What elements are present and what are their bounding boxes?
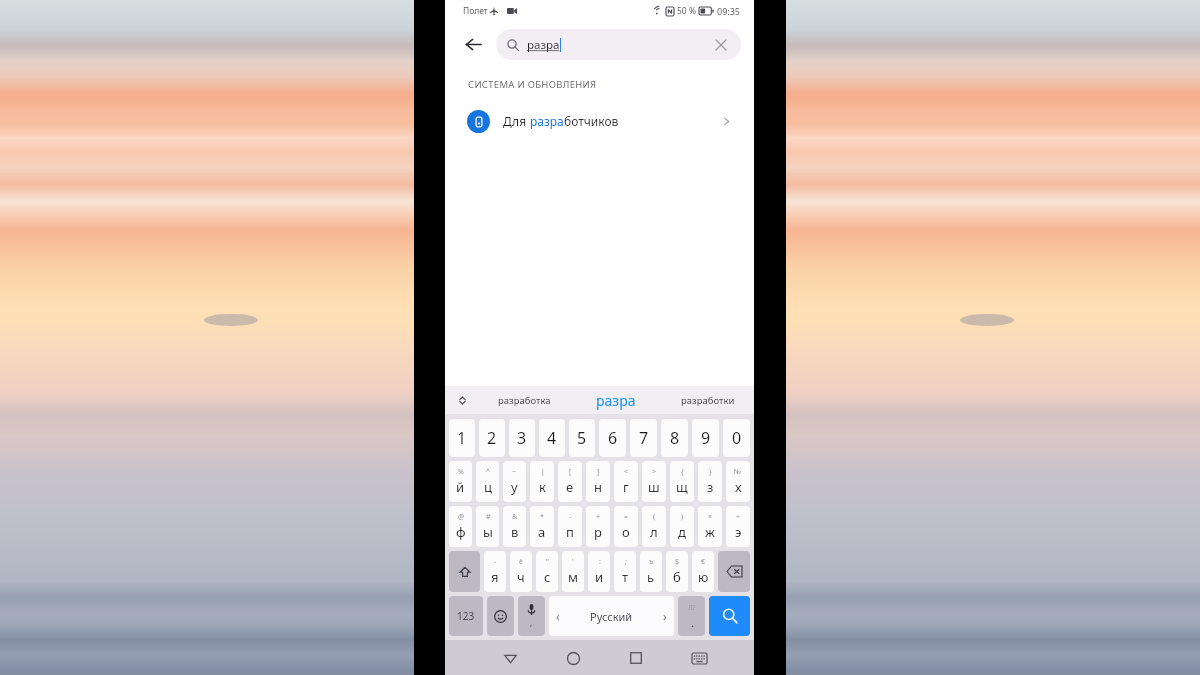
staticText: д: [678, 523, 686, 541]
button[interactable]: Домой: [558, 643, 588, 673]
staticText: ч: [517, 568, 525, 586]
button[interactable]: 7: [630, 419, 657, 457]
staticText: у: [511, 478, 518, 496]
button[interactable]: 123: [449, 596, 483, 636]
staticText: н: [594, 478, 602, 496]
button[interactable]: ~: [503, 461, 526, 502]
button[interactable]: {: [670, 461, 694, 502]
staticText: +: [596, 512, 601, 522]
button[interactable]: *: [530, 506, 554, 547]
staticText: б: [673, 568, 681, 586]
staticText: {: [681, 467, 684, 477]
staticText: $: [675, 557, 680, 567]
button[interactable]: 4: [539, 419, 565, 457]
staticText: *: [540, 512, 544, 522]
button[interactable]: -: [558, 506, 582, 547]
button[interactable]: Недавние: [621, 643, 651, 673]
button[interactable]: №: [726, 461, 750, 502]
button[interactable]: 6: [599, 419, 626, 457]
button[interactable]: Очистить: [712, 36, 730, 54]
button[interactable]: =: [614, 506, 638, 547]
button[interactable]: ": [536, 551, 558, 592]
button[interactable]: |: [530, 461, 554, 502]
staticText: ‹: [556, 608, 560, 624]
staticText: €: [701, 557, 706, 567]
staticText: р: [594, 523, 602, 541]
button[interactable]: (: [642, 506, 666, 547]
button[interactable]: ×: [698, 506, 722, 547]
button[interactable]: &: [503, 506, 526, 547]
button[interactable]: <: [614, 461, 638, 502]
button[interactable]: Развернуть подсказки: [445, 386, 479, 414]
button[interactable]: Скрыть клавиатуру: [684, 643, 714, 673]
button[interactable]: $: [666, 551, 688, 592]
button[interactable]: ^: [476, 461, 499, 502]
button[interactable]: 8: [661, 419, 688, 457]
button[interactable]: Для: [445, 101, 754, 141]
staticText: п: [566, 523, 574, 541]
button[interactable]: 5: [569, 419, 595, 457]
staticText: разра: [596, 391, 636, 410]
staticText: .: [691, 615, 694, 630]
button[interactable]: Эмодзи: [487, 596, 514, 636]
button[interactable]: €: [692, 551, 714, 592]
button[interactable]: ‹: [549, 596, 674, 636]
button[interactable]: ё: [510, 551, 532, 592]
button[interactable]: 3: [509, 419, 535, 457]
button[interactable]: +: [586, 506, 610, 547]
button[interactable]: [: [558, 461, 582, 502]
button[interactable]: :: [588, 551, 610, 592]
button[interactable]: ': [562, 551, 584, 592]
staticText: ›: [663, 608, 667, 624]
button[interactable]: Назад: [495, 643, 525, 673]
button[interactable]: Голосовой ввод: [518, 596, 545, 636]
button[interactable]: разра: [570, 386, 662, 414]
staticText: ~: [512, 467, 517, 477]
staticText: 0: [732, 427, 742, 449]
staticText: щ: [676, 478, 688, 496]
button[interactable]: Удалить: [718, 551, 750, 592]
button[interactable]: ÷: [726, 506, 750, 547]
staticText: Русский: [590, 609, 633, 624]
button[interactable]: 0: [723, 419, 750, 457]
staticText: ^: [486, 467, 491, 477]
staticText: СИСТЕМА И ОБНОВЛЕНИЯ: [468, 78, 597, 91]
button[interactable]: 2: [479, 419, 505, 457]
button[interactable]: -: [484, 551, 506, 592]
staticText: =: [624, 512, 629, 522]
staticText: >: [652, 467, 657, 477]
button[interactable]: ): [670, 506, 694, 547]
staticText: }: [709, 467, 712, 477]
staticText: 1: [457, 427, 467, 449]
button[interactable]: разработка: [479, 386, 570, 414]
staticText: 3: [517, 427, 527, 449]
button[interactable]: @: [449, 506, 472, 547]
button[interactable]: Поиск: [709, 596, 750, 636]
button[interactable]: 1: [449, 419, 475, 457]
button[interactable]: >: [642, 461, 666, 502]
staticText: ;: [625, 557, 627, 567]
button[interactable]: %: [449, 461, 472, 502]
staticText: разра: [530, 113, 564, 129]
staticText: л: [650, 523, 658, 541]
button[interactable]: разработки: [662, 386, 754, 414]
staticText: э: [735, 523, 742, 541]
staticText: в: [511, 523, 519, 541]
button[interactable]: ;: [614, 551, 636, 592]
button[interactable]: ]: [586, 461, 610, 502]
button[interactable]: Shift: [449, 551, 480, 592]
staticText: 123: [457, 609, 475, 623]
staticText: ботчиков: [564, 113, 619, 129]
button[interactable]: Л?: [678, 596, 705, 636]
staticText: 09:35: [717, 5, 741, 17]
staticText: -: [494, 557, 497, 567]
staticText: ,: [530, 617, 533, 628]
staticText: -: [569, 512, 572, 522]
button[interactable]: ъ: [640, 551, 662, 592]
button[interactable]: Назад: [458, 29, 488, 59]
button[interactable]: 9: [692, 419, 719, 457]
button[interactable]: }: [698, 461, 722, 502]
button[interactable]: #: [476, 506, 499, 547]
staticText: ×: [708, 512, 713, 522]
button[interactable]: разра: [496, 29, 741, 60]
